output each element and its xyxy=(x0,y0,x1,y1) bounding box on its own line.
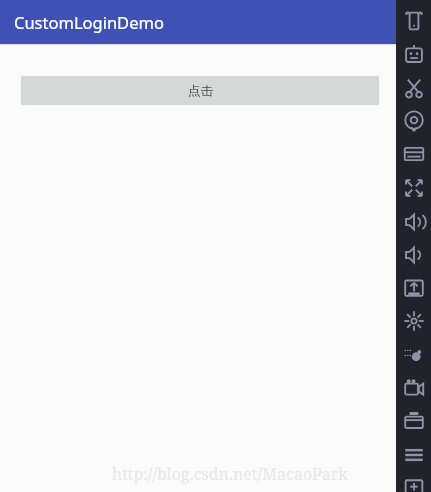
button[interactable]: Snapshot xyxy=(396,305,431,337)
staticText: CustomLoginDemo xyxy=(14,11,164,33)
button[interactable]: Record screen xyxy=(396,372,431,404)
button[interactable]: Menu xyxy=(396,439,431,471)
button[interactable]: Volume up xyxy=(396,206,431,238)
button[interactable]: Zoom xyxy=(396,172,431,204)
button[interactable]: 点击 xyxy=(21,76,379,105)
button[interactable]: Rotate device xyxy=(396,5,431,37)
staticText: 点击 xyxy=(188,83,213,99)
button[interactable]: Virtual sensors xyxy=(396,39,431,71)
button[interactable]: Location xyxy=(396,105,431,137)
button[interactable]: Extended controls xyxy=(396,470,431,492)
button[interactable]: Volume down xyxy=(396,239,431,271)
button[interactable]: Camera xyxy=(396,405,431,437)
button[interactable]: Display xyxy=(396,138,431,170)
staticText: http://blog.csdn.net/MacaoPark xyxy=(112,463,348,485)
button[interactable]: Bug report xyxy=(396,339,431,371)
button[interactable]: Install APK xyxy=(396,272,431,304)
button[interactable]: Screenshot xyxy=(396,72,431,104)
